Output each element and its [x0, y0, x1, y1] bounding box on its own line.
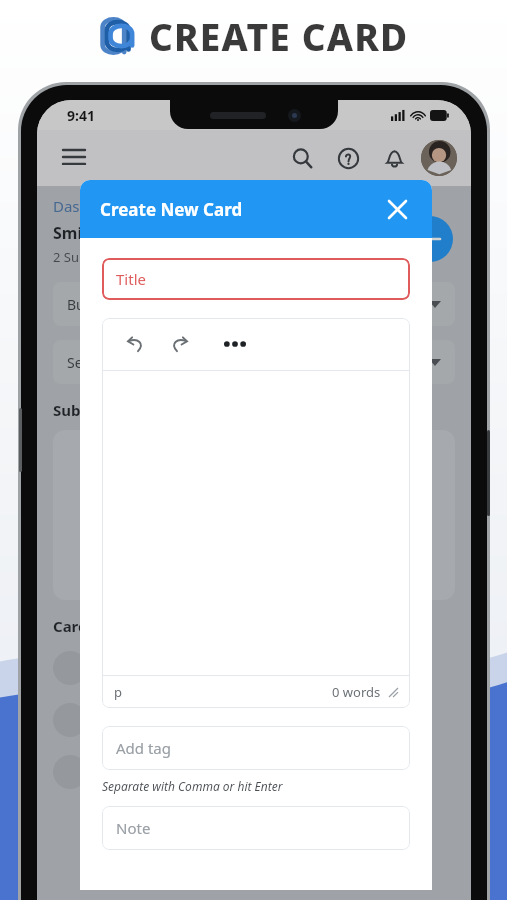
button[interactable]: Profile [421, 140, 457, 176]
button[interactable]: Search [285, 141, 319, 175]
button[interactable]: Yearly report [53, 750, 455, 794]
button[interactable]: Title [116, 258, 396, 300]
button[interactable]: Add [407, 216, 453, 262]
button[interactable]: Note [116, 806, 396, 850]
staticText: Dashboard [53, 196, 131, 216]
button[interactable]: Search [67, 340, 441, 384]
button[interactable]: Add tag [116, 726, 396, 770]
staticText: Separate with Comma or hit Enter [102, 778, 283, 794]
staticText: Business [67, 295, 429, 314]
staticText: p [114, 683, 332, 701]
button[interactable]: Notifications [377, 141, 411, 175]
staticText: Contact [99, 711, 150, 730]
staticText: Smith Family [53, 222, 157, 244]
staticText: Title [116, 269, 146, 289]
button[interactable]: Menu [57, 141, 91, 175]
button[interactable]: Contact [53, 698, 455, 742]
button[interactable]: Close [382, 194, 412, 224]
staticText: 9:41 [67, 106, 95, 125]
staticText: Cards [53, 616, 96, 636]
staticText: About us [99, 659, 158, 678]
staticText: 2 Subfolders [53, 248, 130, 266]
staticText: Search [67, 353, 429, 372]
button[interactable]: Redo [164, 329, 194, 359]
staticText: Yearly report [99, 763, 184, 782]
staticText: CREATE CARD [149, 11, 409, 61]
staticText: 0 words [332, 683, 381, 701]
button[interactable]: About us [53, 646, 455, 690]
staticText: Add tag [116, 738, 171, 758]
button[interactable]: Undo [120, 329, 150, 359]
button[interactable]: Business [67, 282, 441, 326]
button[interactable]: More options [220, 329, 250, 359]
staticText: Create New Card [100, 198, 382, 221]
staticText: Note [116, 818, 151, 838]
button[interactable]: Help [331, 141, 365, 175]
button[interactable] [53, 430, 455, 600]
staticText: Subfolders [53, 400, 133, 420]
